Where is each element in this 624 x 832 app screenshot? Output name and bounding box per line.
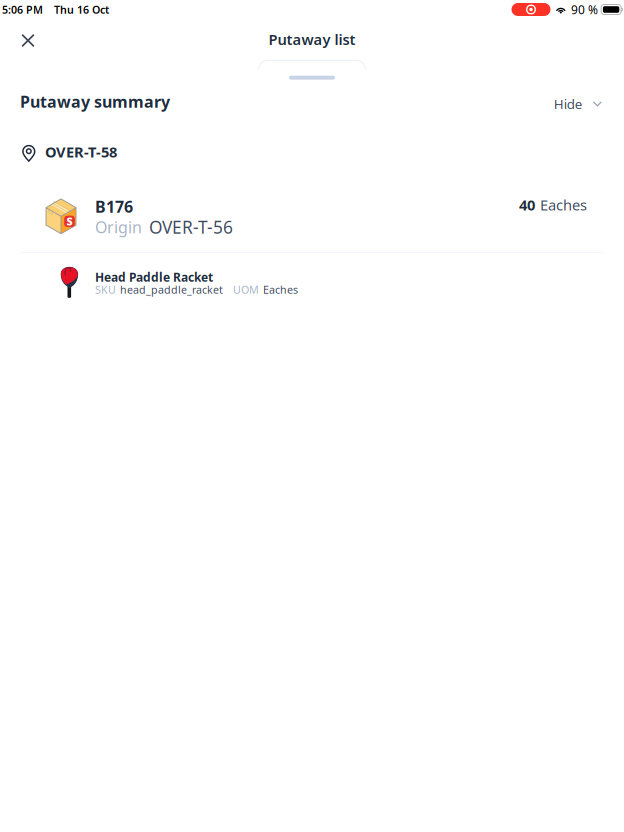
staticText: OVER-T-58 [45,142,117,161]
staticText: Head Paddle Racket [95,269,213,285]
staticText: 40 [519,195,535,214]
staticText: Eaches [263,282,298,297]
staticText: OVER-T-56 [149,215,233,238]
staticText: Eaches [540,195,587,214]
staticText: Thu 16 Oct [54,2,109,17]
button[interactable]: Close [11,23,45,57]
button[interactable]: Hide [550,91,606,117]
staticText: SKU [95,282,116,297]
staticText: S [66,214,72,228]
staticText: Putaway list [268,29,355,49]
staticText: head_paddle_racket [120,282,223,297]
staticText: Hide [554,95,583,113]
staticText: B176 [95,196,133,217]
staticText: Putaway summary [20,91,170,112]
staticText: Origin [95,216,142,238]
staticText: 90 % [571,1,598,17]
staticText: 5:06 PM [2,2,43,17]
staticText: UOM [233,282,259,297]
